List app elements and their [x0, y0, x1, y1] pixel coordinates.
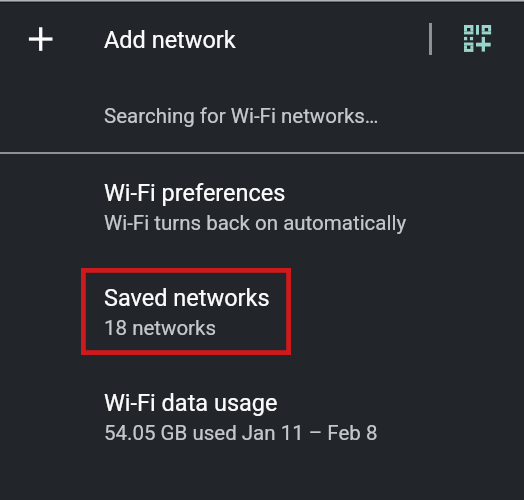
staticText: Saved networks: [104, 284, 270, 312]
staticText: 18 networks: [104, 316, 217, 340]
button[interactable]: Add network: [17, 15, 65, 63]
button[interactable]: Wi-Fi preferences: [0, 159, 524, 263]
button[interactable]: Wi-Fi data usage: [0, 369, 524, 473]
staticText: Wi-Fi data usage: [104, 389, 278, 417]
staticText: 54.05 GB used Jan 11 – Feb 8: [104, 421, 378, 445]
staticText: Wi-Fi turns back on automatically: [104, 211, 407, 235]
staticText: Searching for Wi-Fi networks…: [104, 104, 379, 128]
button[interactable]: Add network using QR code: [453, 15, 501, 63]
button[interactable]: Saved networks: [0, 264, 524, 368]
staticText: Add network: [104, 26, 236, 54]
staticText: Wi-Fi preferences: [104, 179, 286, 207]
